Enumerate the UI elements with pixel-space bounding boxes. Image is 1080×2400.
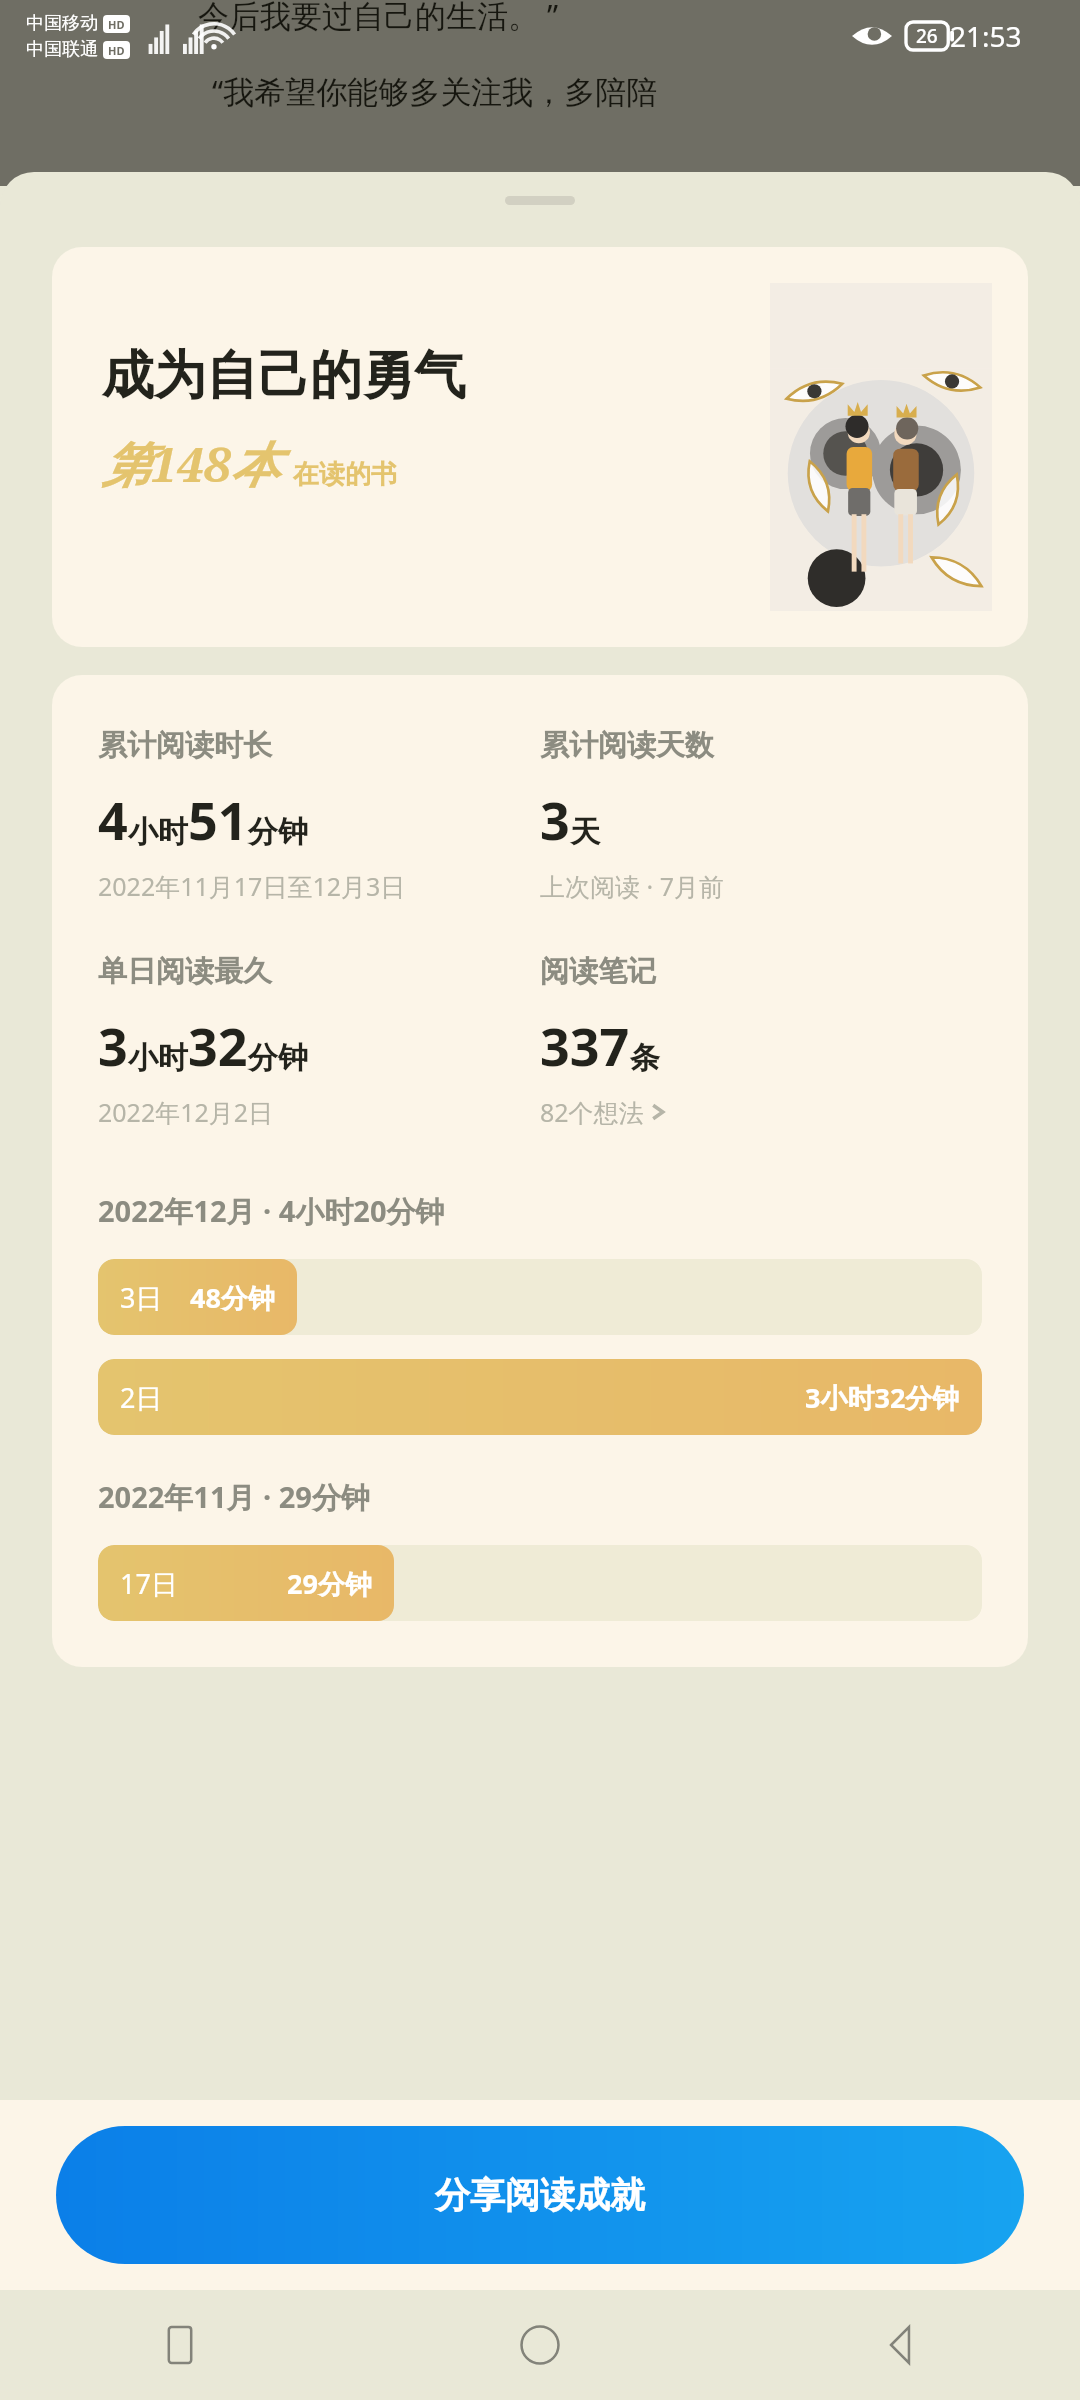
staticText: 82个想法 <box>540 1095 644 1129</box>
staticText: 26 <box>916 23 938 49</box>
staticText: 3 <box>98 1010 128 1081</box>
button[interactable]: 成为自己的勇气 <box>52 247 1028 647</box>
staticText: 2022年11月 · 29分钟 <box>98 1477 370 1517</box>
button[interactable]: 累计阅读时长 <box>98 727 540 903</box>
staticText: 中国移动 <box>26 12 98 35</box>
staticText: 17日 <box>120 1565 178 1602</box>
button[interactable]: 单日阅读最久 <box>98 953 540 1129</box>
staticText: 分享阅读成就 <box>435 2173 645 2217</box>
staticText: HD <box>108 17 125 32</box>
staticText: HD <box>108 43 125 58</box>
staticText: 天 <box>570 813 600 851</box>
staticText: 2022年12月2日 <box>98 1095 274 1129</box>
staticText: 小时 <box>128 813 188 851</box>
staticText: 累计阅读天数 <box>540 727 714 764</box>
staticText: 分钟 <box>248 813 308 851</box>
staticText: 单日阅读最久 <box>98 953 272 990</box>
staticText: 上次阅读 · 7月前 <box>540 869 725 903</box>
staticText: 条 <box>630 1039 660 1077</box>
staticText: 48分钟 <box>190 1279 275 1316</box>
staticText: 在读的书 <box>293 458 397 491</box>
staticText: 21:53 <box>950 17 1022 55</box>
staticText: 3小时32分钟 <box>805 1379 960 1416</box>
staticText: 今后我要过自己的生活。 ” <box>198 0 559 36</box>
staticText: 3 <box>540 784 570 855</box>
staticText: 2日 <box>120 1379 163 1416</box>
staticText: 第148本 <box>102 431 279 497</box>
button[interactable]: Back <box>720 2290 1080 2400</box>
staticText: 成为自己的勇气 <box>102 343 466 409</box>
staticText: 51 <box>188 784 248 855</box>
staticText: 2022年11月17日至12月3日 <box>98 869 406 903</box>
staticText: 小时 <box>128 1039 188 1077</box>
staticText: “我希望你能够多关注我，多陪陪 <box>212 70 658 112</box>
staticText: 中国联通 <box>26 38 98 61</box>
staticText: 4 <box>98 784 128 855</box>
staticText: 3日 <box>120 1279 163 1316</box>
button[interactable]: Recents <box>0 2290 360 2400</box>
button[interactable]: Home <box>360 2290 720 2400</box>
staticText: 累计阅读时长 <box>98 727 272 764</box>
staticText: 29分钟 <box>287 1565 372 1602</box>
button[interactable]: 17日 <box>98 1545 982 1621</box>
button[interactable]: 3日 <box>98 1259 982 1335</box>
button[interactable]: 2日 <box>98 1359 982 1435</box>
button[interactable]: 分享阅读成就 <box>56 2126 1024 2264</box>
staticText: 阅读笔记 <box>540 953 656 990</box>
button[interactable]: 累计阅读天数 <box>540 727 982 903</box>
staticText: 2022年12月 · 4小时20分钟 <box>98 1191 445 1231</box>
staticText: 337 <box>540 1010 630 1081</box>
staticText: 32 <box>188 1010 248 1081</box>
staticText: 分钟 <box>248 1039 308 1077</box>
button[interactable]: 阅读笔记 <box>540 953 982 1129</box>
